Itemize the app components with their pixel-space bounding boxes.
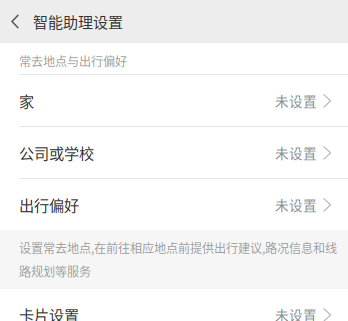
button[interactable]: 公司或学校 <box>0 127 348 178</box>
button[interactable]: 家 <box>0 75 348 126</box>
staticText: 出行偏好 <box>19 193 79 215</box>
button[interactable]: 卡片设置 <box>0 289 348 321</box>
button[interactable]: Back <box>0 0 25 43</box>
staticText: 未设置 <box>275 305 317 321</box>
staticText: 未设置 <box>275 195 317 214</box>
staticText: 公司或学校 <box>19 141 94 163</box>
button[interactable]: 出行偏好 <box>0 179 348 230</box>
staticText: 卡片设置 <box>19 303 79 321</box>
staticText: 智能助理设置 <box>33 11 123 32</box>
staticText: 家 <box>19 89 34 111</box>
staticText: 未设置 <box>275 91 317 110</box>
staticText: 未设置 <box>275 143 317 162</box>
staticText: 常去地点与出行偏好 <box>19 52 127 70</box>
staticText: 设置常去地点,在前往相应地点前提供出行建议,路况信息和线路规划等服务 <box>19 239 337 280</box>
